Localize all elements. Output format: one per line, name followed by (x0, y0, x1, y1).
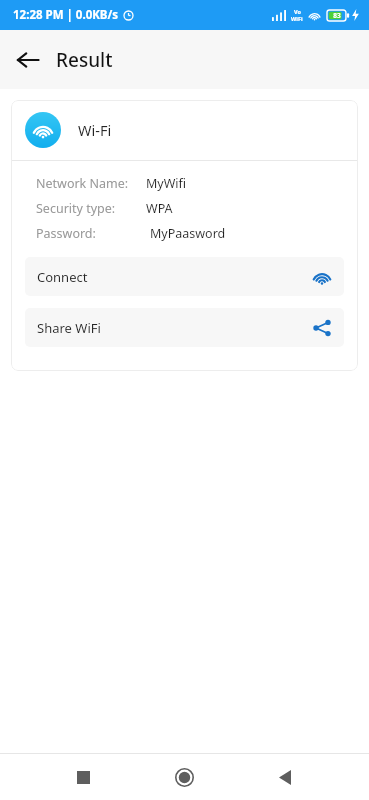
button[interactable]: Home (164, 757, 204, 797)
staticText: Connect (37, 268, 88, 286)
staticText: Wi-Fi (78, 120, 112, 140)
staticText: Result (56, 47, 113, 73)
staticText: 83 (333, 11, 341, 20)
staticText: Vo (294, 8, 301, 15)
button[interactable]: Back (6, 38, 50, 82)
staticText: Password: (36, 225, 96, 242)
button[interactable]: Connect (25, 257, 344, 296)
staticText: MyWifi (146, 175, 187, 192)
staticText: 12:28 PM | 0.0KB/s (13, 7, 119, 23)
staticText: WiFi (291, 15, 303, 22)
staticText: Network Name: (36, 175, 129, 192)
button[interactable]: Share WiFi (25, 308, 344, 347)
staticText: Security type: (36, 200, 116, 217)
staticText: Share WiFi (37, 319, 101, 337)
button[interactable]: Recent apps (63, 757, 103, 797)
staticText: WPA (146, 200, 173, 217)
staticText: MyPaasword (150, 225, 226, 242)
button[interactable]: Back (265, 757, 305, 797)
